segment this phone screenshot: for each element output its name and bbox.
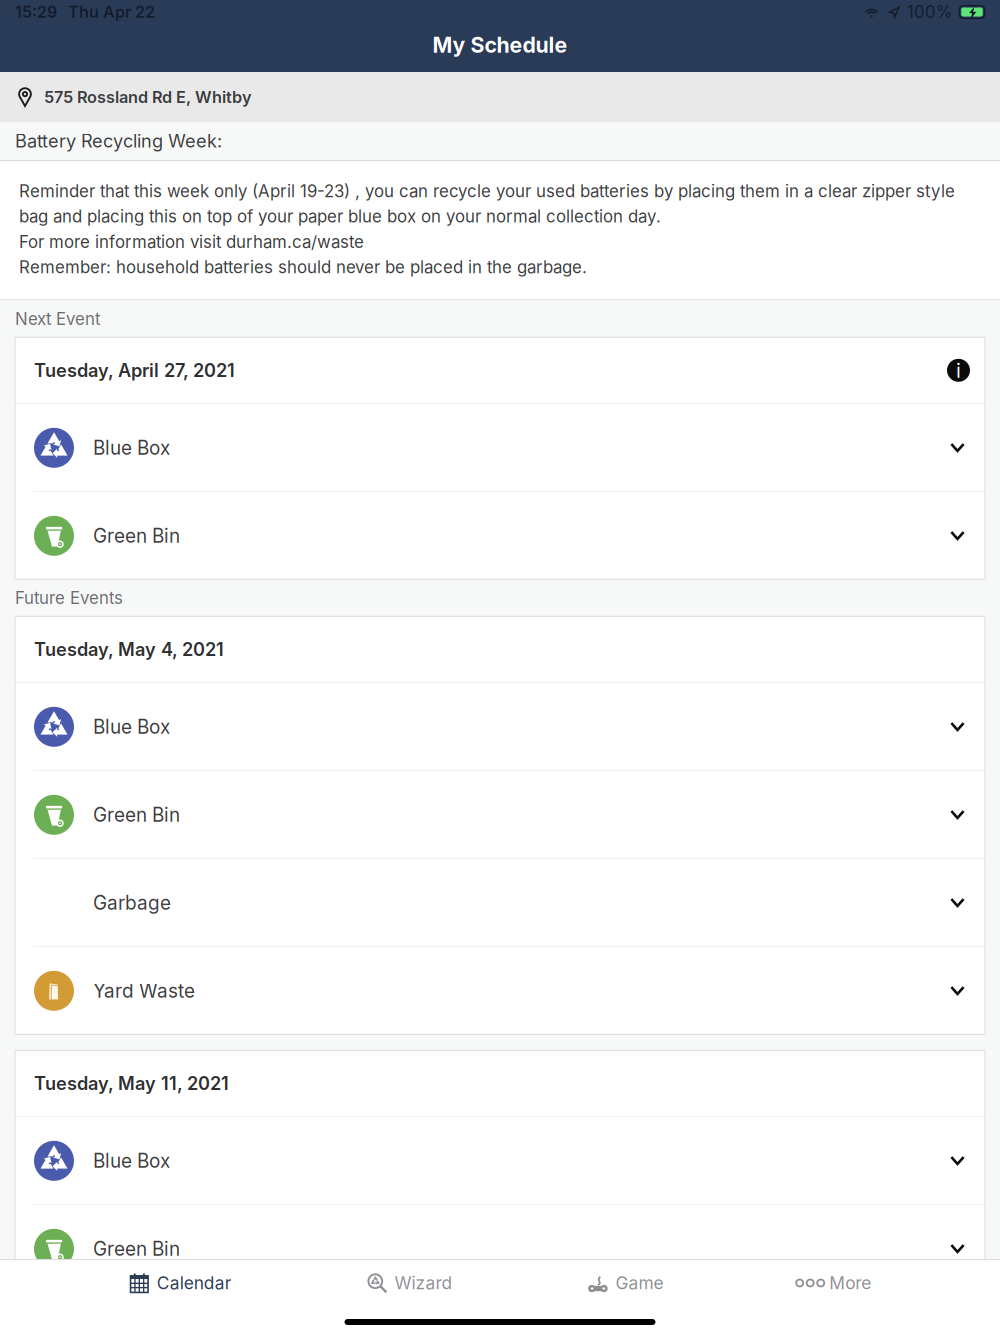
staticText: Thu Apr 22 (68, 2, 155, 22)
staticText: Blue Box (93, 715, 170, 738)
staticText: Remember: household batteries should nev… (19, 257, 587, 277)
button[interactable]: More (792, 1260, 877, 1306)
staticText: 100% (907, 2, 952, 22)
staticText: Future Events (15, 588, 123, 608)
staticText: Wizard (395, 1272, 453, 1293)
button[interactable]: Green Bin (15, 1205, 985, 1292)
staticText: Green Bin (93, 1237, 180, 1260)
button[interactable]: Green Bin (15, 771, 985, 858)
button[interactable]: Blue Box (15, 683, 985, 770)
button[interactable]: 575 Rossland Rd E, Whitby (0, 72, 1000, 122)
staticText: Green Bin (93, 524, 180, 547)
staticText: Tuesday, May 4, 2021 (34, 638, 224, 660)
staticText: Blue Box (93, 436, 170, 459)
staticText: i (956, 358, 961, 383)
staticText: Tuesday, May 11, 2021 (34, 1072, 229, 1094)
staticText: Next Event (15, 309, 100, 329)
button[interactable]: Game (581, 1260, 669, 1306)
button[interactable]: Blue Box (15, 1117, 985, 1204)
button[interactable]: Blue Box (15, 404, 985, 491)
staticText: Battery Recycling Week: (15, 130, 222, 152)
staticText: More (829, 1272, 871, 1293)
staticText: 15:29 (15, 2, 57, 22)
staticText: My Schedule (432, 32, 567, 58)
staticText: Calendar (157, 1272, 232, 1293)
button[interactable]: Calendar (123, 1260, 238, 1306)
button[interactable]: Wizard (361, 1260, 459, 1306)
staticText: 575 Rossland Rd E, Whitby (44, 87, 252, 107)
staticText: Reminder that this week only (April 19-2… (19, 181, 955, 201)
button[interactable]: Garbage (15, 859, 985, 946)
button[interactable]: Yard Waste (15, 947, 985, 1034)
button[interactable]: Green Bin (15, 492, 985, 579)
staticText: For more information visit durham.ca/was… (19, 232, 364, 252)
staticText: bag and placing this on top of your pape… (19, 206, 661, 227)
button[interactable]: Event information (947, 359, 970, 382)
staticText: Garbage (93, 891, 171, 914)
staticText: Blue Box (93, 1149, 170, 1172)
staticText: Green Bin (93, 803, 180, 826)
staticText: Game (615, 1272, 663, 1293)
staticText: Yard Waste (93, 979, 195, 1002)
staticText: Tuesday, April 27, 2021 (34, 359, 235, 381)
